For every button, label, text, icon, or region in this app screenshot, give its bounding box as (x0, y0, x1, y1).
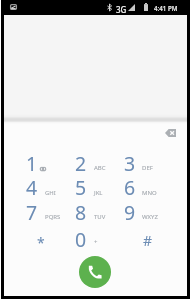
staticText: WXYZ (142, 213, 158, 221)
button[interactable] (20, 171, 68, 195)
staticText: 6 (124, 174, 136, 201)
staticText: GHI (45, 189, 56, 197)
button[interactable]: Call (79, 256, 111, 288)
button[interactable] (69, 171, 117, 195)
staticText: 7 (26, 199, 38, 226)
staticText: 2 (75, 150, 87, 177)
staticText: 4 (26, 174, 38, 201)
staticText: ABC (94, 164, 106, 172)
staticText: JKL (94, 189, 103, 197)
staticText: # (143, 231, 153, 250)
staticText: PQRS (45, 213, 61, 221)
staticText: 3G (116, 4, 127, 15)
button[interactable] (69, 147, 117, 171)
staticText: 0 (75, 226, 87, 253)
button[interactable] (69, 224, 117, 248)
staticText: MNO (142, 189, 157, 197)
button[interactable]: Backspace (157, 123, 183, 143)
button[interactable] (118, 196, 166, 220)
staticText: 9 (124, 199, 136, 226)
button[interactable] (69, 196, 117, 220)
button[interactable] (20, 224, 68, 248)
button[interactable] (20, 147, 68, 171)
staticText: 8 (75, 199, 87, 226)
staticText: 4:41 PM (154, 4, 178, 12)
staticText: 1 (26, 150, 38, 177)
staticText: 5 (75, 174, 87, 201)
button[interactable] (122, 224, 170, 248)
staticText: TUV (94, 213, 106, 221)
button[interactable] (118, 171, 166, 195)
staticText: + (94, 238, 98, 246)
other: Screenshot (10, 4, 17, 10)
staticText: 3 (124, 150, 136, 177)
button[interactable] (118, 147, 166, 171)
staticText: * (37, 233, 45, 252)
staticText: DEF (142, 164, 153, 172)
button[interactable] (20, 196, 68, 220)
